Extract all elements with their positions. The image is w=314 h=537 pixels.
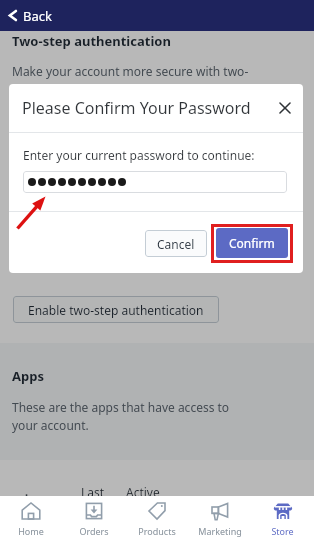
staticText: Home — [18, 525, 44, 537]
button[interactable]: Enable two-step authentication — [13, 296, 219, 323]
staticText: . — [25, 484, 29, 499]
staticText: Back — [23, 7, 52, 25]
button[interactable]: Products — [125, 496, 188, 537]
staticText: Active — [126, 484, 160, 500]
button[interactable]: Home — [0, 496, 62, 537]
staticText: Last — [81, 484, 105, 500]
staticText: Two-step authentication — [12, 32, 171, 50]
staticText: Marketing — [198, 525, 242, 537]
staticText: your account. — [12, 417, 89, 433]
button[interactable] — [23, 171, 287, 193]
staticText: These are the apps that have access to — [12, 399, 230, 415]
staticText: Enable two-step authentication — [28, 302, 204, 318]
button[interactable]: Store — [251, 496, 314, 537]
staticText: Orders — [79, 525, 109, 537]
staticText: Products — [138, 525, 176, 537]
staticText: Make your account more secure with two- — [12, 63, 249, 79]
staticText: Store — [271, 525, 294, 537]
button[interactable]: Back — [0, 0, 314, 31]
button[interactable]: Confirm — [216, 228, 288, 258]
staticText: Enter your current password to continue: — [23, 147, 255, 163]
button[interactable]: Close dialog — [276, 99, 294, 117]
staticText: Apps — [12, 367, 44, 385]
staticText: Please Confirm Your Password — [22, 97, 251, 119]
button[interactable]: Cancel — [145, 230, 207, 257]
staticText: Confirm — [229, 235, 275, 251]
button[interactable]: Marketing — [188, 496, 251, 537]
staticText: Cancel — [157, 236, 195, 252]
button[interactable]: Orders — [62, 496, 125, 537]
